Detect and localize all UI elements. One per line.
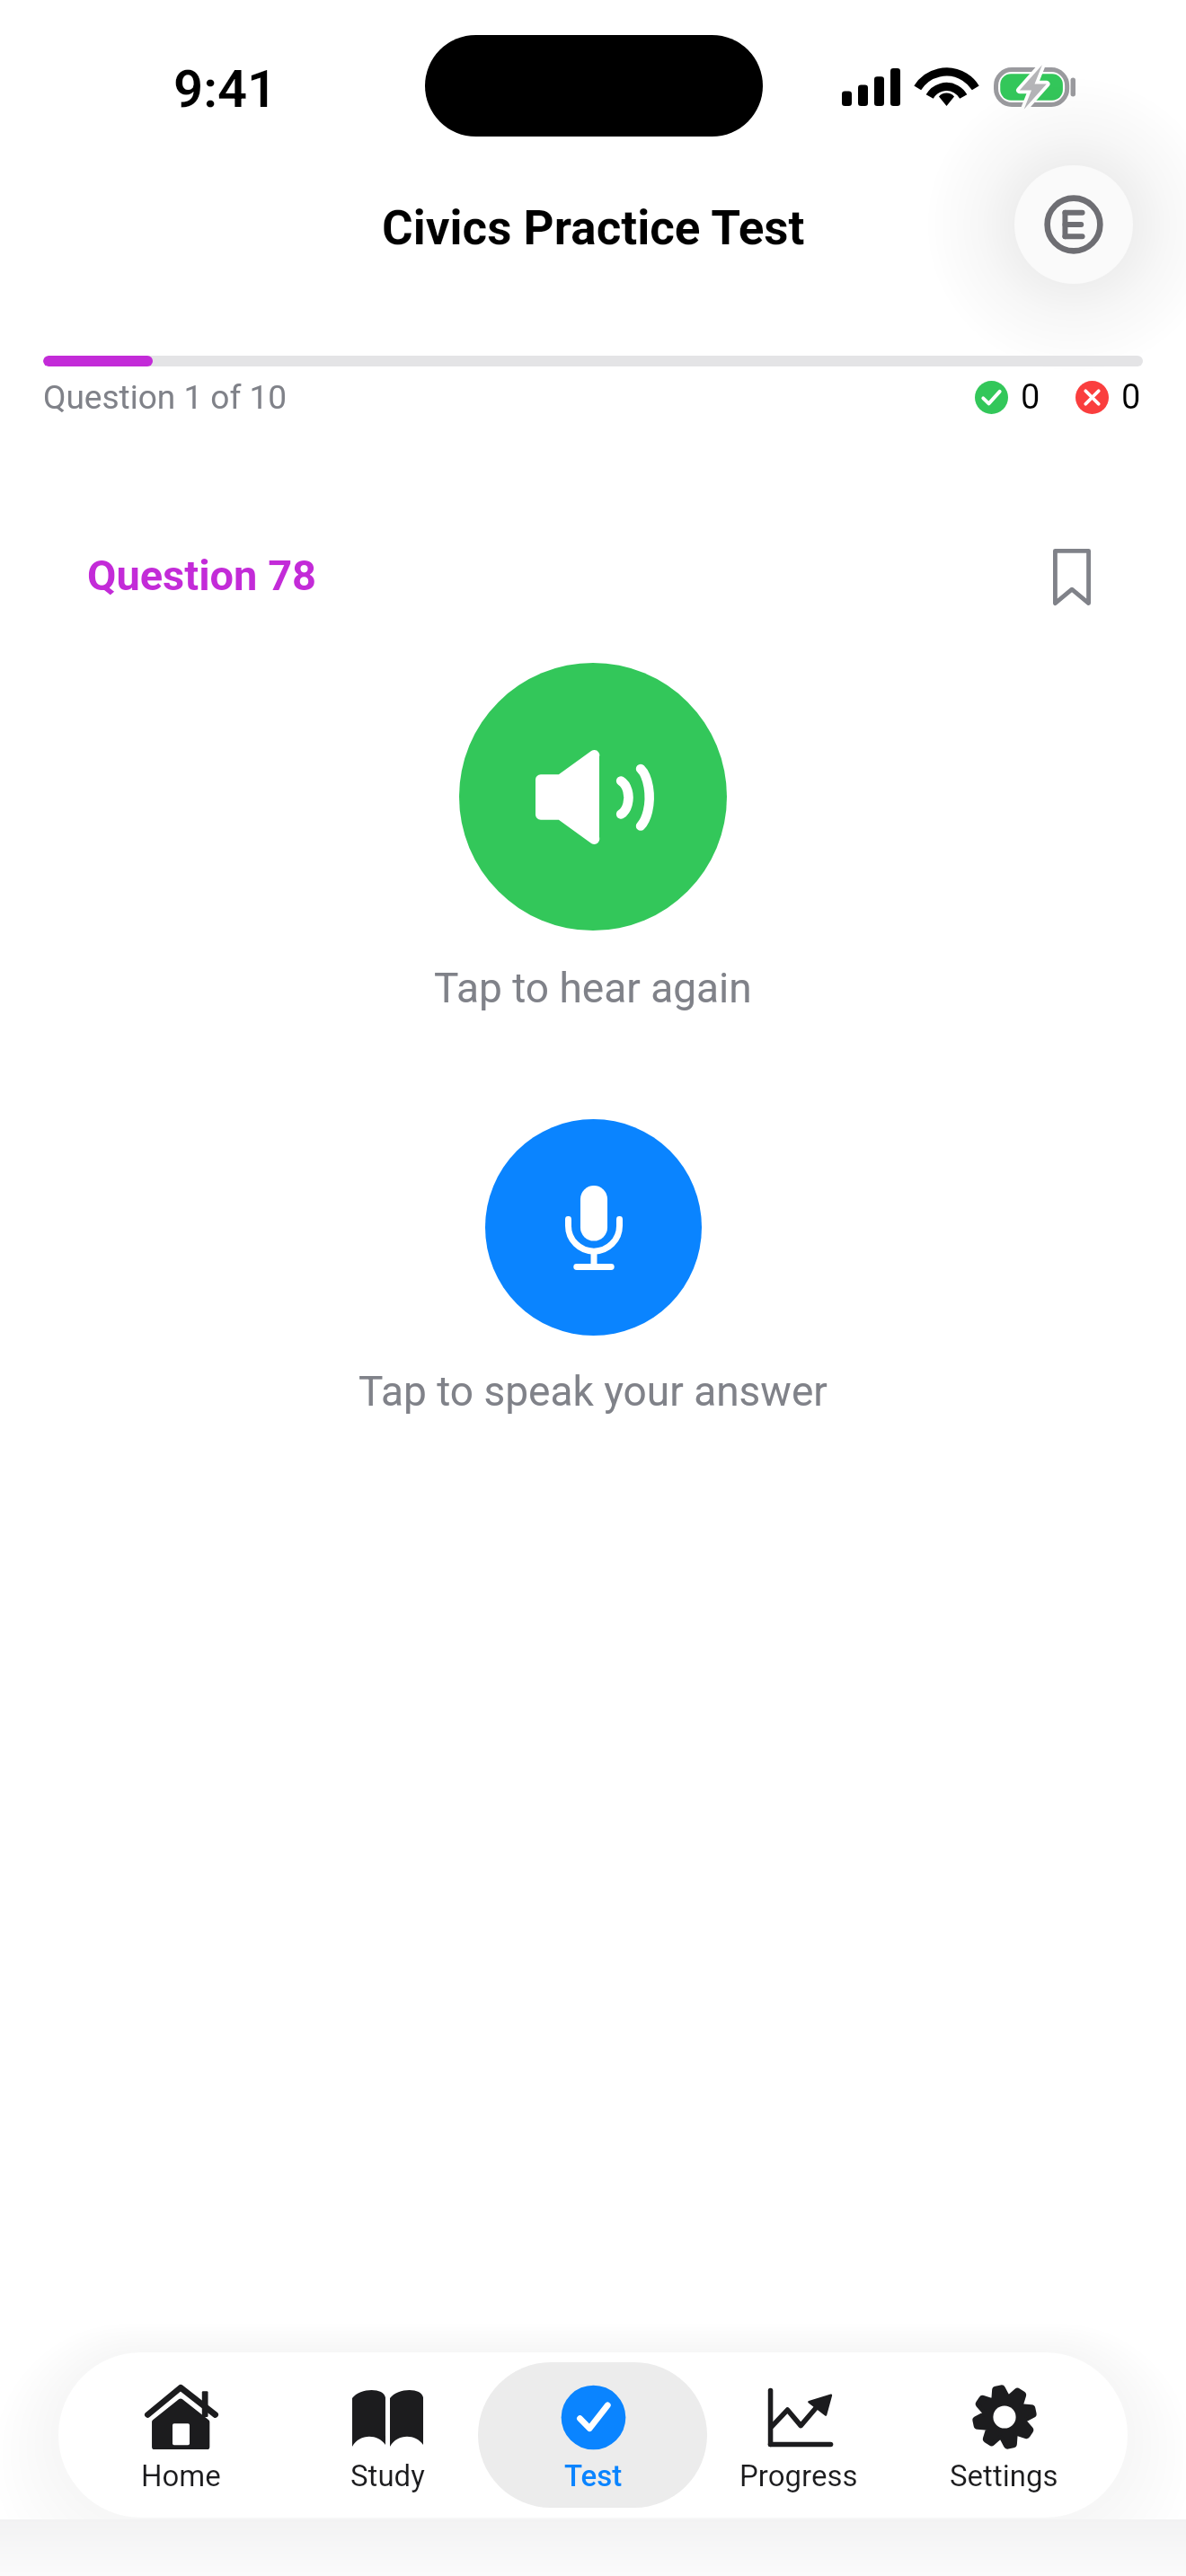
staticText: Tap to hear again <box>434 964 752 1012</box>
button[interactable]: Bookmark <box>1036 532 1108 620</box>
button[interactable]: Settings <box>901 2352 1107 2518</box>
button[interactable]: Home <box>78 2352 284 2518</box>
button[interactable]: Tap to speak your answer <box>332 1119 854 1416</box>
staticText: Study <box>350 2458 425 2493</box>
button[interactable]: Study <box>284 2352 490 2518</box>
button[interactable]: Exit test <box>1014 165 1133 284</box>
button[interactable]: Progress <box>695 2352 901 2518</box>
button[interactable]: Tap to hear again <box>332 663 854 1012</box>
staticText: Question 78 <box>87 551 317 600</box>
staticText: Settings <box>950 2458 1058 2493</box>
staticText: Tap to speak your answer <box>358 1367 828 1416</box>
staticText: 0 <box>1021 377 1040 418</box>
staticText: 9:41 <box>173 58 278 119</box>
staticText: Progress <box>739 2458 858 2493</box>
staticText: Civics Practice Test <box>382 200 805 256</box>
button[interactable]: Test <box>490 2352 695 2518</box>
staticText: 0 <box>1121 377 1141 418</box>
staticText: Question 1 of 10 <box>43 378 288 417</box>
staticText: Home <box>141 2458 221 2493</box>
staticText: Test <box>564 2458 623 2493</box>
